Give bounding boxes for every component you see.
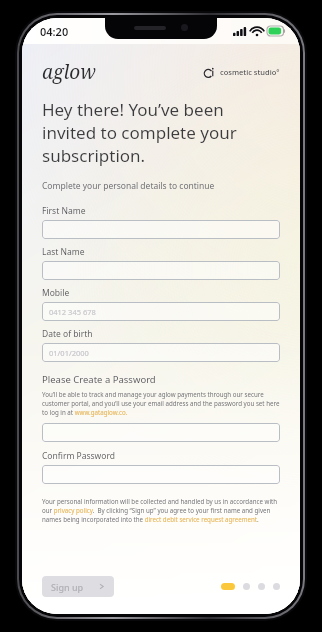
button[interactable] [42, 423, 280, 442]
button[interactable]: aglow [42, 59, 96, 85]
other: Cosmetic studio logo [204, 66, 217, 78]
button[interactable]: Sign up [42, 576, 114, 597]
staticText: Complete your personal details to contin… [42, 180, 215, 192]
button[interactable] [42, 261, 280, 280]
staticText: You’ll be able to track and manage your … [42, 390, 280, 417]
button[interactable] [221, 583, 235, 590]
staticText: Your personal information will be collec… [42, 497, 280, 524]
staticText: Sign up [51, 581, 84, 593]
button[interactable] [42, 220, 280, 239]
button[interactable] [258, 583, 265, 590]
staticText: 04:20 [40, 24, 69, 39]
staticText: Mobile [42, 287, 70, 299]
staticText: 01/01/2000 [49, 348, 89, 358]
staticText: First Name [42, 205, 86, 217]
staticText: Confirm Password [42, 450, 115, 462]
button[interactable] [243, 583, 250, 590]
staticText: Hey there! You’ve been invited to comple… [42, 98, 237, 167]
staticText: Date of birth [42, 328, 93, 340]
button[interactable] [42, 465, 280, 484]
button[interactable]: 0412 345 678 [42, 302, 280, 321]
button[interactable]: Cosmetic studio logo [204, 66, 280, 78]
button[interactable]: 01/01/2000 [42, 343, 280, 362]
button[interactable] [273, 583, 280, 590]
staticText: cosmetic studio° [220, 67, 280, 77]
staticText: 0412 345 678 [49, 307, 96, 317]
staticText: Last Name [42, 246, 85, 258]
staticText: Please Create a Password [42, 373, 156, 386]
